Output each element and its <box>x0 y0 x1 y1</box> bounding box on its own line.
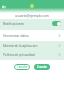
button[interactable]: Cancelar <box>14 64 30 70</box>
button[interactable]: Idioma de la aplicacion <box>0 41 64 50</box>
button[interactable]: Notificaciones <box>0 19 64 30</box>
button[interactable]: Sincronizar datos <box>0 30 64 41</box>
staticText: Notificaciones <box>3 22 25 26</box>
staticText: Idioma de la aplicacion <box>3 44 38 48</box>
staticText: Sincronizar datos <box>3 34 29 38</box>
staticText: usuario@ejemplo.com <box>15 14 49 18</box>
staticText: Guardar <box>37 65 48 69</box>
button[interactable]: Guardar <box>34 64 50 70</box>
staticText: Cancelar <box>17 65 28 69</box>
button[interactable]: Back <box>1 4 7 10</box>
button[interactable]: Politica de privacidad <box>0 50 64 59</box>
staticText: Politica de privacidad <box>3 53 35 57</box>
